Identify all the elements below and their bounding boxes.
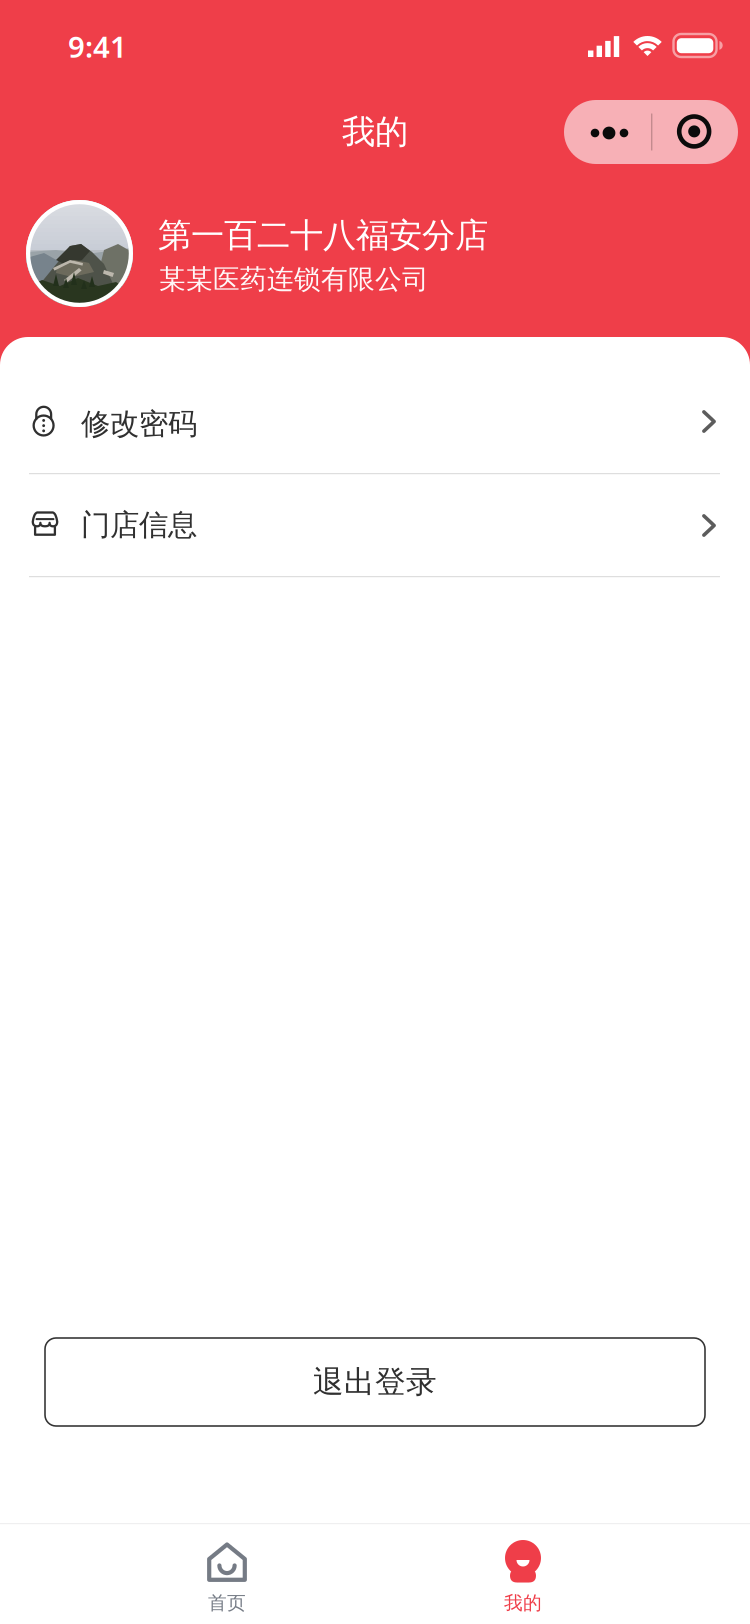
staticText: 我的 (342, 111, 408, 152)
staticText: 我的 (504, 1591, 542, 1614)
staticText: 修改密码 (81, 406, 197, 442)
button[interactable]: 我的 (375, 1523, 750, 1623)
staticText: 门店信息 (81, 507, 197, 543)
staticText: 第一百二十八福安分店 (158, 215, 488, 256)
button[interactable]: 门店信息 (0, 474, 750, 577)
staticText: 首页 (208, 1591, 246, 1614)
staticText: 退出登录 (313, 1363, 437, 1401)
button[interactable]: 首页 (0, 1523, 375, 1623)
staticText: 9:41 (68, 27, 127, 66)
button[interactable]: Close mini program (651, 100, 738, 164)
button[interactable]: 退出登录 (45, 1338, 705, 1426)
button[interactable]: 修改密码 (0, 370, 750, 473)
button[interactable]: More (564, 100, 651, 164)
staticText: 某某医药连锁有限公司 (159, 263, 429, 296)
